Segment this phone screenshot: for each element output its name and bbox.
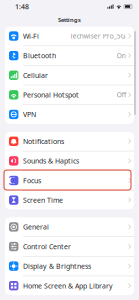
button[interactable]: Screen Time: [5, 191, 134, 210]
staticText: General: [23, 222, 49, 232]
staticText: Display & Brightness: [23, 261, 91, 271]
button[interactable]: Personal Hotspot: [5, 85, 134, 104]
staticText: Bluetooth: [23, 51, 56, 60]
staticText: Home Screen & App Library: [23, 281, 113, 290]
button[interactable]: General: [5, 217, 134, 236]
button[interactable]: Control Center: [5, 237, 134, 256]
button[interactable]: Bluetooth: [5, 46, 134, 65]
button[interactable]: Wi-Fi: [5, 26, 134, 46]
staticText: Notifications: [23, 137, 64, 146]
staticText: 1:48: [15, 2, 29, 11]
button[interactable]: Cellular: [5, 66, 134, 85]
staticText: Off: [117, 90, 126, 99]
button[interactable]: Notifications: [5, 132, 134, 151]
staticText: Wi-Fi: [23, 31, 39, 41]
button[interactable]: Sounds & Haptics: [5, 151, 134, 170]
staticText: On: [117, 51, 126, 60]
staticText: Control Center: [23, 242, 71, 251]
staticText: VPN: [23, 110, 36, 119]
staticText: Sounds & Haptics: [23, 156, 79, 166]
staticText: Techwiser Pro_5G: [70, 32, 126, 40]
staticText: Cellular: [23, 70, 48, 80]
button[interactable]: Display & Brightness: [5, 257, 134, 276]
button[interactable]: Focus: [5, 171, 134, 190]
button[interactable]: Home Screen & App Library: [5, 276, 134, 295]
staticText: Settings: [58, 16, 81, 24]
staticText: Focus: [23, 176, 41, 185]
staticText: Personal Hotspot: [23, 90, 79, 99]
button[interactable]: VPN: [5, 105, 134, 124]
staticText: Screen Time: [23, 195, 63, 205]
